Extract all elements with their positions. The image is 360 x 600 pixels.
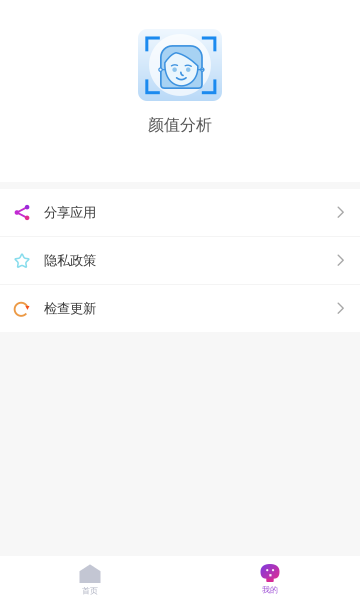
staticText: 检查更新 bbox=[44, 300, 96, 317]
staticText: 我的 bbox=[262, 585, 278, 595]
staticText: 首页 bbox=[82, 586, 98, 596]
button[interactable]: 首页 bbox=[0, 556, 180, 600]
button[interactable]: 我的 bbox=[180, 556, 360, 600]
staticText: 颜值分析 bbox=[148, 115, 212, 135]
button[interactable]: 隐私政策 bbox=[0, 237, 360, 284]
staticText: 分享应用 bbox=[44, 204, 96, 221]
button[interactable]: 检查更新 bbox=[0, 285, 360, 332]
staticText: 隐私政策 bbox=[44, 252, 96, 269]
button[interactable]: 分享应用 bbox=[0, 189, 360, 236]
